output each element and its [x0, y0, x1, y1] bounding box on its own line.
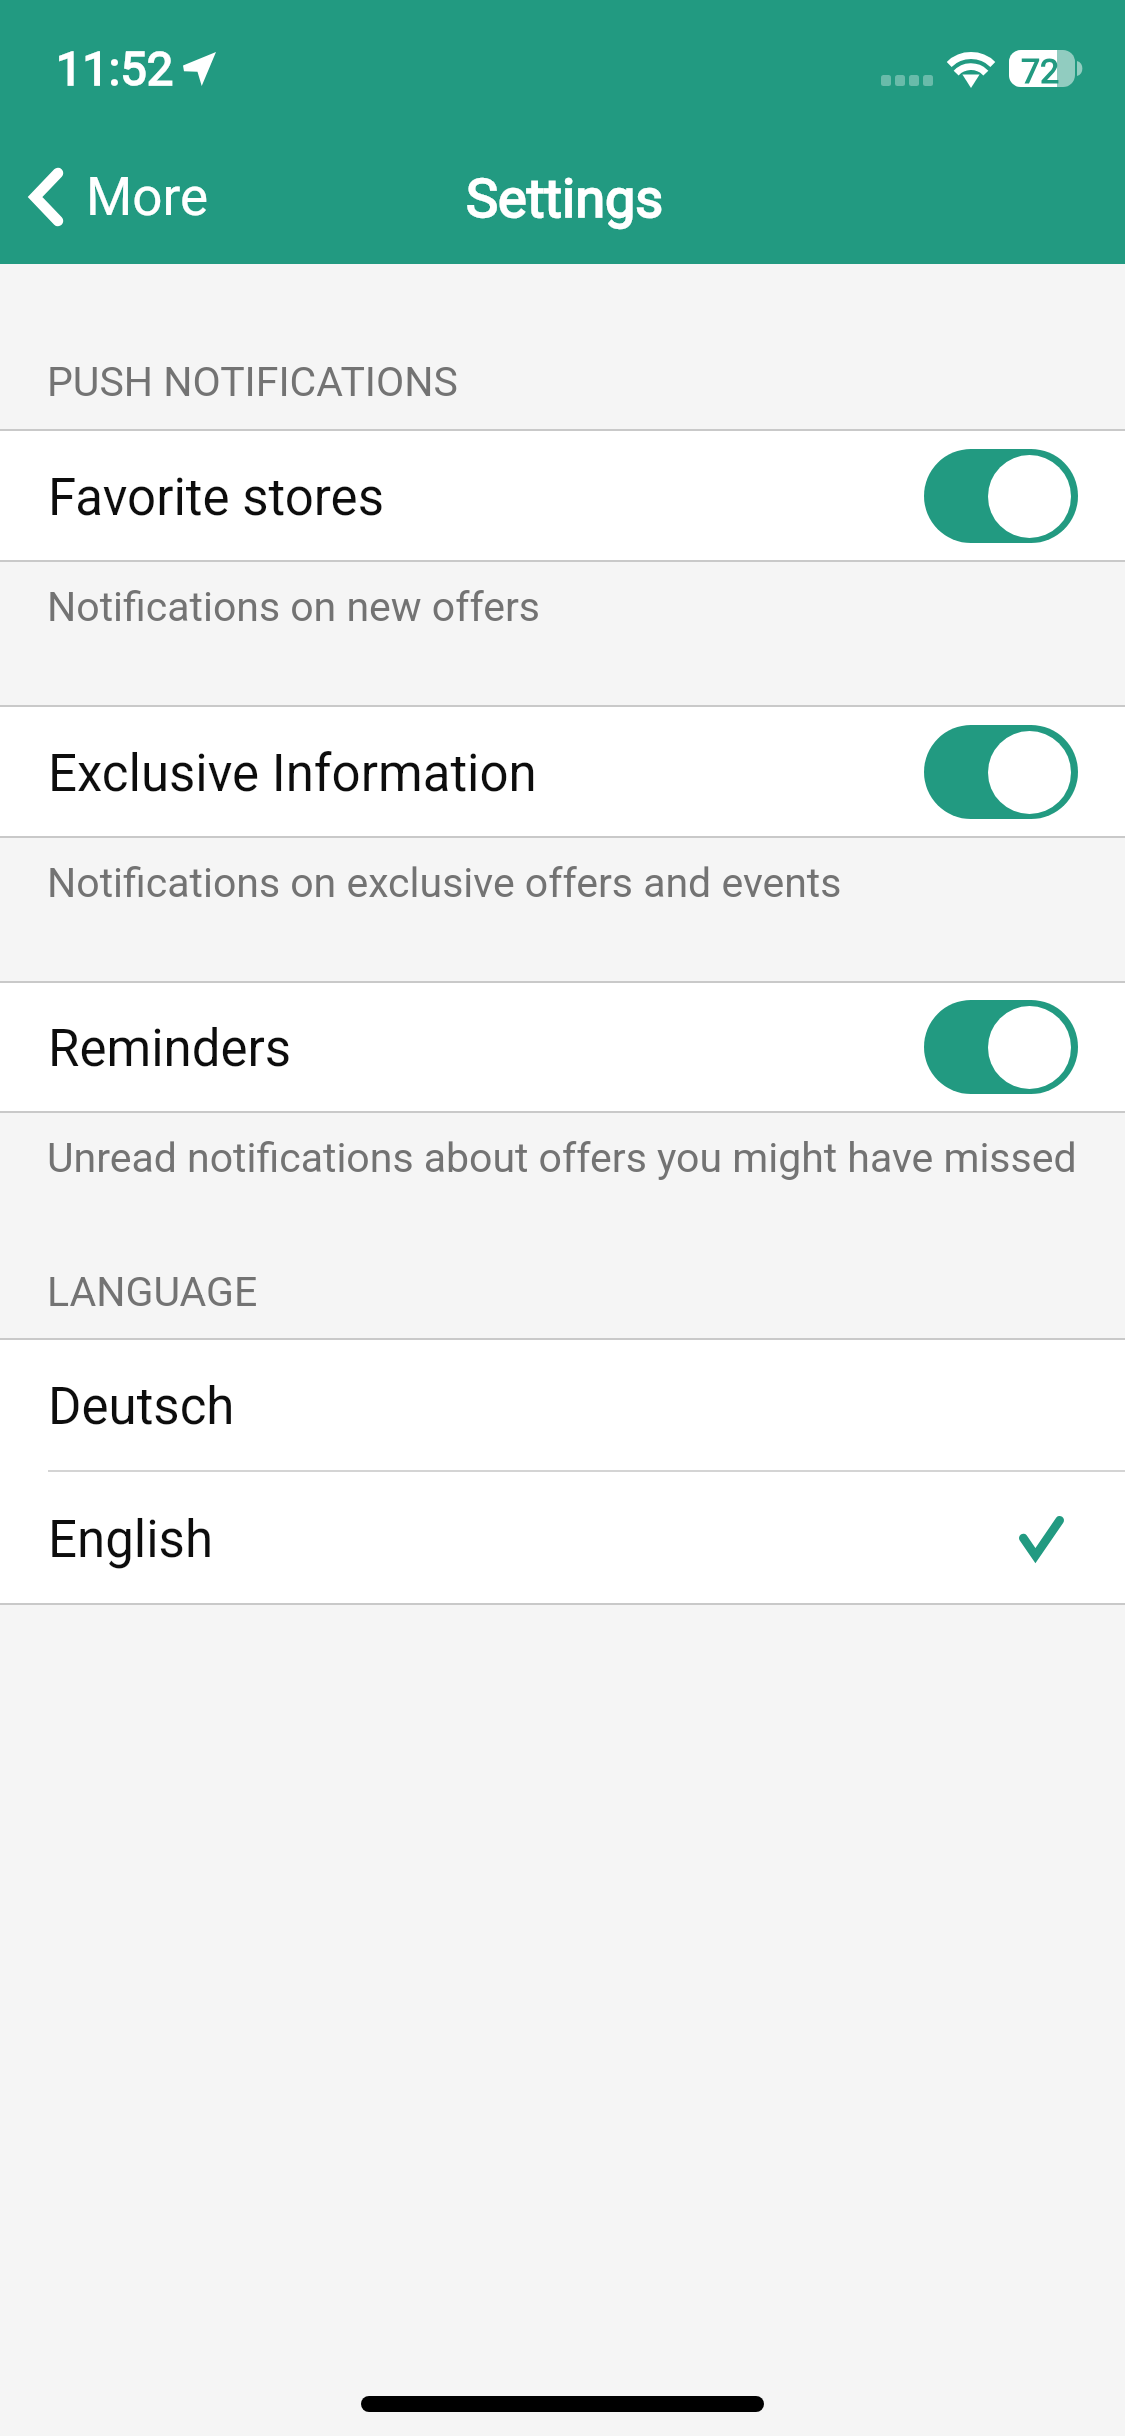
staticText: Exclusive Information	[48, 744, 537, 804]
staticText: Settings	[466, 167, 664, 230]
staticText: Notifications on exclusive offers and ev…	[47, 859, 842, 907]
other: Battery 72 percent	[1009, 50, 1075, 87]
staticText: Reminders	[48, 1019, 292, 1079]
staticText: 11:52	[56, 41, 174, 96]
button[interactable]: Toggle Reminders	[924, 1000, 1078, 1094]
button[interactable]: Toggle Favorite stores	[924, 449, 1078, 543]
other: Back	[30, 168, 63, 226]
button[interactable]: Back	[30, 166, 209, 228]
other: Cellular signal	[881, 75, 933, 86]
button[interactable]: English	[0, 1472, 1125, 1603]
staticText: Deutsch	[48, 1377, 235, 1437]
staticText: PUSH NOTIFICATIONS	[47, 358, 458, 406]
button[interactable]: Deutsch	[0, 1340, 1125, 1470]
button[interactable]: Toggle Exclusive Information	[924, 725, 1078, 819]
other: Selected language	[1019, 1516, 1064, 1560]
button[interactable]: Reminders	[0, 983, 1125, 1111]
staticText: Notifications on new offers	[47, 583, 541, 631]
staticText: Favorite stores	[48, 468, 384, 528]
button[interactable]: Favorite stores	[0, 431, 1125, 560]
staticText: 72	[1021, 51, 1060, 87]
staticText: LANGUAGE	[47, 1268, 258, 1316]
staticText: Unread notifications about offers you mi…	[47, 1134, 1077, 1182]
other: Wi-Fi	[946, 47, 996, 91]
button[interactable]: Exclusive Information	[0, 707, 1125, 836]
staticText: English	[48, 1510, 214, 1570]
other: Location	[183, 52, 216, 86]
staticText: More	[86, 166, 209, 228]
